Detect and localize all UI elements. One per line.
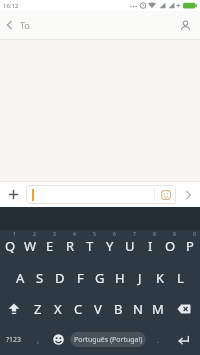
staticText: D: [55, 269, 65, 287]
staticText: Q: [5, 237, 16, 255]
staticText: K: [156, 269, 165, 287]
button[interactable]: [155, 185, 176, 204]
button[interactable]: Z: [28, 293, 48, 324]
staticText: S: [36, 269, 44, 287]
button[interactable]: N: [128, 293, 148, 324]
staticText: W: [24, 237, 37, 255]
staticText: 1: [13, 231, 16, 238]
button[interactable]: [168, 293, 200, 324]
button[interactable]: Y: [100, 230, 120, 262]
button[interactable]: U: [120, 230, 140, 262]
button[interactable]: C: [68, 293, 88, 324]
button[interactable]: W: [20, 230, 40, 262]
button[interactable]: [168, 324, 200, 355]
staticText: 5: [93, 231, 96, 238]
button[interactable]: P: [180, 230, 200, 262]
staticText: M: [152, 300, 164, 318]
staticText: Português (Portugal): [74, 335, 143, 345]
button[interactable]: R: [60, 230, 80, 262]
staticText: 2: [33, 231, 36, 238]
staticText: C: [74, 300, 83, 318]
staticText: ,: [37, 334, 40, 345]
button[interactable]: S: [30, 262, 50, 293]
staticText: .: [157, 334, 160, 345]
staticText: L: [177, 269, 184, 287]
staticText: B: [114, 300, 123, 318]
button[interactable]: B: [108, 293, 128, 324]
staticText: To: [20, 19, 30, 31]
button[interactable]: Q: [0, 230, 20, 262]
staticText: N: [133, 300, 143, 318]
button[interactable]: T: [80, 230, 100, 262]
button[interactable]: [48, 324, 68, 355]
staticText: 9: [173, 231, 176, 238]
button[interactable]: H: [110, 262, 130, 293]
button[interactable]: M: [148, 293, 168, 324]
button[interactable]: [176, 182, 200, 207]
staticText: U: [125, 237, 135, 255]
staticText: E: [46, 237, 54, 255]
staticText: T: [86, 237, 94, 255]
button[interactable]: L: [170, 262, 190, 293]
button[interactable]: G: [90, 262, 110, 293]
button[interactable]: J: [130, 262, 150, 293]
button[interactable]: I: [140, 230, 160, 262]
staticText: R: [66, 237, 75, 255]
button[interactable]: [0, 293, 28, 324]
button[interactable]: Português (Portugal): [68, 324, 148, 355]
staticText: V: [94, 300, 102, 318]
staticText: O: [165, 237, 176, 255]
staticText: P: [186, 237, 194, 255]
staticText: A: [16, 269, 25, 287]
button[interactable]: ?123: [0, 324, 28, 355]
staticText: 7: [133, 231, 136, 238]
staticText: 4: [73, 231, 76, 238]
button[interactable]: K: [150, 262, 170, 293]
button[interactable]: D: [50, 262, 70, 293]
staticText: Z: [34, 300, 42, 318]
staticText: 3: [53, 231, 56, 238]
button[interactable]: X: [48, 293, 68, 324]
staticText: 16:12: [3, 2, 19, 10]
button[interactable]: To: [0, 19, 30, 31]
button[interactable]: A: [10, 262, 30, 293]
staticText: 6: [113, 231, 116, 238]
staticText: I: [148, 237, 153, 255]
button[interactable]: O: [160, 230, 180, 262]
button[interactable]: [0, 182, 26, 207]
staticText: ?123: [6, 335, 22, 345]
staticText: F: [77, 269, 84, 287]
button[interactable]: [26, 185, 176, 204]
staticText: 0: [193, 231, 196, 238]
staticText: X: [54, 300, 62, 318]
staticText: Y: [106, 237, 114, 255]
staticText: G: [95, 269, 105, 287]
button[interactable]: E: [40, 230, 60, 262]
staticText: H: [115, 269, 125, 287]
staticText: 8: [153, 231, 156, 238]
button[interactable]: F: [70, 262, 90, 293]
staticText: J: [138, 269, 142, 287]
button[interactable]: V: [88, 293, 108, 324]
button[interactable]: [180, 20, 200, 31]
